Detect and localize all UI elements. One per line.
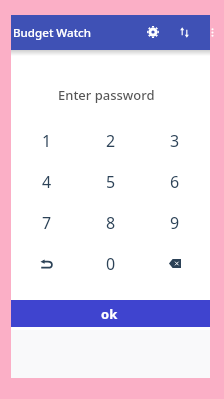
staticText: 7 [42,212,52,234]
staticText: 9 [170,212,180,234]
staticText: 1 [42,130,52,152]
button[interactable]: Sort [170,15,198,50]
button[interactable]: Settings [139,15,167,50]
button[interactable]: Backspace [143,243,207,284]
staticText: 8 [106,212,116,234]
button[interactable]: 2 [79,120,143,161]
other: Backspace [169,259,181,268]
button[interactable]: 8 [79,202,143,243]
button[interactable]: Undo [14,243,79,284]
other: Undo [41,258,53,269]
staticText: Budget Watch [13,25,92,41]
staticText: 3 [170,130,180,152]
button[interactable]: 0 [79,243,143,284]
staticText: 0 [106,253,116,275]
button[interactable]: 4 [14,161,79,202]
button[interactable]: 9 [143,202,207,243]
button[interactable]: 1 [14,120,79,161]
button[interactable]: 3 [143,120,207,161]
button[interactable]: 7 [14,202,79,243]
button[interactable]: 5 [79,161,143,202]
button[interactable]: More options [198,15,222,50]
staticText: 5 [106,171,116,193]
button[interactable]: 6 [143,161,207,202]
staticText: 4 [42,171,52,193]
button[interactable]: ok [11,300,210,327]
staticText: 6 [170,171,180,193]
staticText: ok [101,305,118,323]
staticText: 2 [106,130,116,152]
staticText: Enter password [58,86,155,104]
